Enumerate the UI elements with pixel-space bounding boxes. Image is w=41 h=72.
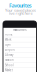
button[interactable]: Station — [3, 58, 36, 63]
staticText: Airport — [5, 48, 15, 51]
staticText: Gym — [5, 43, 10, 46]
staticText: Market — [5, 68, 13, 72]
staticText: Home — [5, 33, 13, 36]
button[interactable]: Library — [3, 53, 36, 58]
button[interactable]: Work — [3, 37, 36, 42]
staticText: Library — [5, 53, 13, 57]
button[interactable]: Home — [3, 32, 36, 37]
button[interactable]: School — [3, 63, 36, 68]
button[interactable]: Airport — [3, 47, 36, 53]
staticText: Favourites — [9, 2, 32, 9]
staticText: School — [5, 63, 14, 67]
staticText: Work — [5, 38, 11, 41]
staticText: Your saved places — [5, 7, 36, 13]
staticText: Station — [5, 58, 14, 62]
staticText: live right here — [8, 10, 32, 16]
button[interactable]: Gym — [3, 42, 36, 47]
button[interactable]: Market — [3, 68, 36, 72]
staticText: Favourites — [13, 28, 26, 32]
